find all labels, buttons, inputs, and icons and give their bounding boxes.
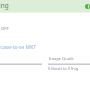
staticText: 0 (best) to 9 (hig xyxy=(48,66,79,71)
button[interactable]: Status badge xyxy=(85,4,90,9)
staticText: Image Qualit xyxy=(49,56,74,61)
button[interactable]: ing xyxy=(0,0,90,12)
staticText: ing xyxy=(0,1,9,10)
button[interactable]: OFF xyxy=(1,26,9,32)
button[interactable]: -case-to-se MKT xyxy=(0,44,37,51)
